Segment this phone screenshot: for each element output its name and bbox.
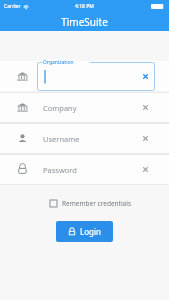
staticText: Password	[43, 165, 77, 175]
staticText: Organization	[43, 59, 74, 66]
button[interactable]: Username	[0, 124, 169, 153]
button[interactable]: Remember credentials	[50, 199, 169, 208]
other: Clear Password	[142, 166, 149, 173]
other: Clear Company	[142, 104, 149, 111]
staticText: Company	[43, 103, 77, 113]
staticText: Carrier	[4, 3, 21, 10]
staticText: Username	[43, 134, 80, 144]
staticText: TimeSuite	[61, 15, 108, 29]
staticText: Remember credentials	[62, 199, 132, 208]
other: Clear Organization	[142, 73, 149, 80]
button[interactable]: Organization	[37, 62, 155, 91]
button[interactable]: Company	[0, 93, 169, 122]
staticText: Login	[80, 226, 101, 237]
button[interactable]: Login	[56, 221, 113, 242]
button[interactable]: Password	[0, 155, 169, 184]
staticText: 4:18 PM	[75, 3, 94, 10]
other: Clear Username	[142, 135, 149, 142]
